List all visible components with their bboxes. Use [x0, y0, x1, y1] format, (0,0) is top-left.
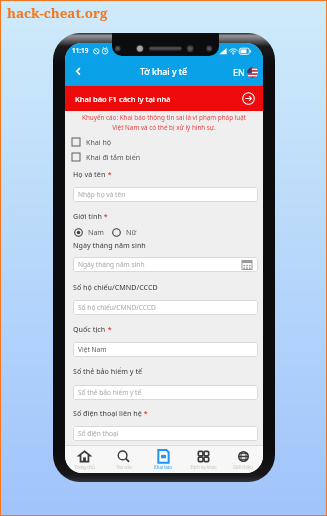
staticText: Trang chủ: [74, 464, 95, 470]
button[interactable]: Khai đi tắm biển: [65, 150, 263, 164]
staticText: Tra cứu: [116, 464, 132, 470]
staticText: Khai đi tắm biển: [86, 152, 141, 162]
staticText: Số điện thoại: [78, 429, 119, 438]
button[interactable]: Trang chủ: [65, 446, 104, 470]
button[interactable]: Khai hộ: [65, 135, 263, 149]
button[interactable]: Nam: [74, 226, 105, 238]
staticText: Khai hộ: [86, 137, 112, 147]
staticText: Khai báo F1 cách ly tại nhà: [75, 94, 171, 104]
staticText: Nam: [88, 227, 105, 237]
staticText: Họ và tên: [73, 169, 106, 179]
button[interactable]: Nhập họ và tên: [73, 187, 258, 202]
button[interactable]: Khai báo: [143, 446, 183, 470]
button[interactable]: Nữ: [112, 226, 137, 238]
staticText: hack-cheat.org: [7, 4, 108, 22]
staticText: Quốc tịch: [73, 324, 106, 334]
staticText: Khuyến cáo: Khai báo thông tin sai là vi…: [82, 113, 246, 122]
staticText: Số hộ chiếu/CMND/CCCD: [78, 303, 156, 312]
staticText: *: [102, 211, 108, 221]
button[interactable]: Back: [68, 62, 88, 82]
staticText: Dịch vụ khác: [190, 464, 217, 470]
staticText: Số thẻ bảo hiểm y tế: [73, 366, 143, 376]
staticText: Số thẻ bảo hiểm y tế: [78, 388, 142, 397]
button[interactable]: Số điện thoại: [73, 426, 258, 441]
button[interactable]: Việt Nam: [73, 342, 258, 357]
button[interactable]: Tra cứu: [104, 446, 143, 470]
button[interactable]: Ngày tháng năm sinh: [73, 257, 258, 272]
staticText: *: [106, 324, 112, 334]
button[interactable]: Số hộ chiếu/CMND/CCCD: [73, 300, 258, 315]
staticText: Việt Nam và có thể bị xử lý hình sự.: [112, 123, 216, 132]
button[interactable]: Số thẻ bảo hiểm y tế: [73, 385, 258, 400]
staticText: *: [106, 169, 112, 179]
staticText: Ngày tháng năm sinh: [78, 260, 145, 269]
staticText: *: [142, 408, 148, 418]
staticText: EN: [233, 66, 245, 78]
staticText: Tờ khai y tế: [140, 66, 188, 78]
staticText: Giới tính: [73, 211, 102, 221]
staticText: Khai báo: [154, 464, 172, 470]
button[interactable]: EN: [233, 66, 258, 78]
staticText: Số điện thoại liên hệ: [73, 408, 142, 418]
staticText: Số hộ chiếu/CMND/CCCD: [73, 282, 158, 292]
staticText: 11:19: [72, 46, 89, 55]
button[interactable]: Dịch vụ khác: [183, 446, 223, 470]
button[interactable]: Giới thiệu: [223, 446, 263, 470]
staticText: Giới thiệu: [233, 464, 253, 470]
staticText: Ngày tháng năm sinh: [73, 240, 146, 250]
staticText: Nữ: [126, 227, 137, 237]
staticText: Việt Nam: [78, 345, 107, 354]
staticText: Nhập họ và tên: [78, 190, 126, 199]
button[interactable]: Khai báo F1 cách ly tại nhà: [65, 86, 263, 111]
